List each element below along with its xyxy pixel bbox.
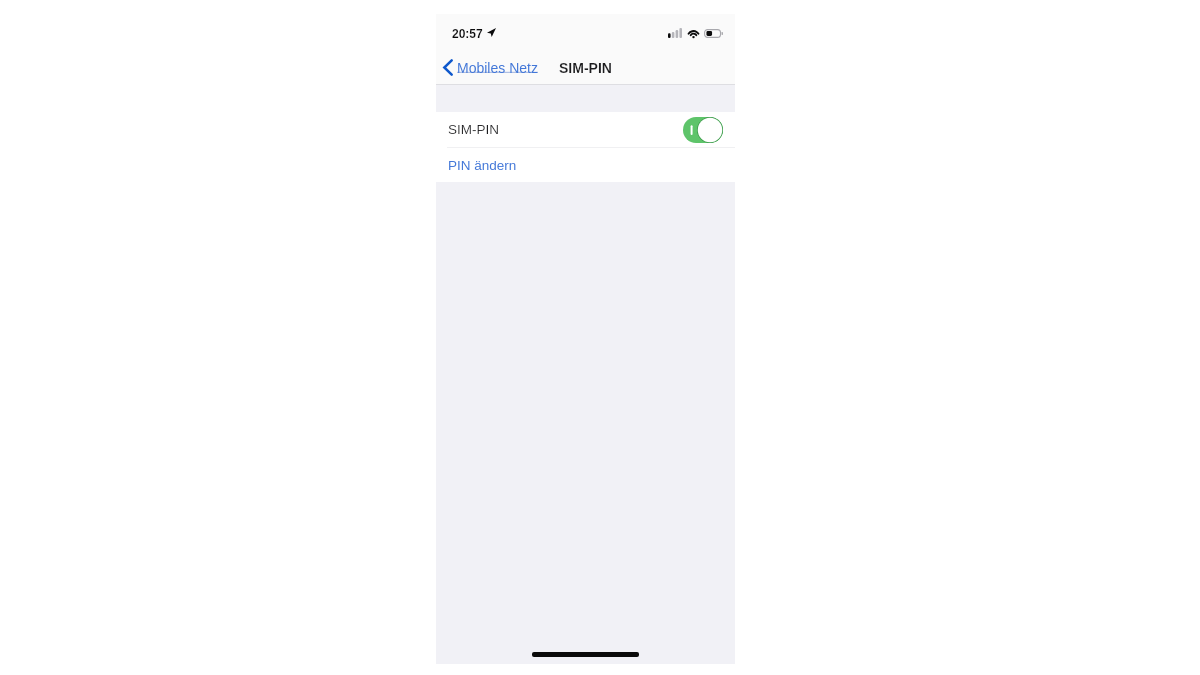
button[interactable]: PIN ändern <box>436 148 735 182</box>
staticText: Mobiles Netz <box>457 60 538 76</box>
staticText: PIN ändern <box>448 158 517 173</box>
button[interactable]: Zurück zu Mobiles Netz <box>441 56 540 79</box>
button[interactable]: SIM-PIN <box>436 112 735 147</box>
button[interactable]: SIM-PIN aktiviert <box>683 117 723 143</box>
staticText: 20:57 <box>452 27 483 40</box>
staticText: SIM-PIN <box>559 60 612 76</box>
staticText: SIM-PIN <box>448 122 500 137</box>
